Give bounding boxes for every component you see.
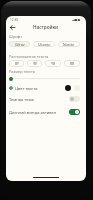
- staticText: Nunito: [63, 42, 75, 47]
- button[interactable]: Ubuntu: [33, 41, 55, 47]
- button[interactable]: Align left: [9, 60, 24, 67]
- button[interactable]: Justify: [64, 60, 80, 67]
- staticText: 12:30: [10, 18, 19, 22]
- staticText: Расположение текста: [9, 54, 49, 59]
- button[interactable]: Gilroy: [9, 41, 30, 47]
- staticText: Ubuntu: [38, 42, 51, 47]
- staticText: Размер текста: [9, 69, 35, 74]
- staticText: Настройки: [33, 24, 59, 30]
- button[interactable]: Align right: [45, 60, 61, 67]
- staticText: Шрифт: [9, 34, 23, 39]
- staticText: Цвет текста: [15, 86, 38, 91]
- button[interactable]: Align center: [27, 60, 42, 67]
- button[interactable]: Back: [6, 21, 18, 33]
- button[interactable]: Nunito: [58, 41, 80, 47]
- staticText: Темная тема: [9, 97, 34, 102]
- button[interactable]: Цвет текста: [9, 84, 80, 92]
- button[interactable]: Темная тема: [9, 95, 80, 103]
- staticText: Gilroy: [15, 42, 25, 47]
- button[interactable]: Дисплей всегда активен: [9, 108, 80, 116]
- staticText: Дисплей всегда активен: [9, 110, 57, 115]
